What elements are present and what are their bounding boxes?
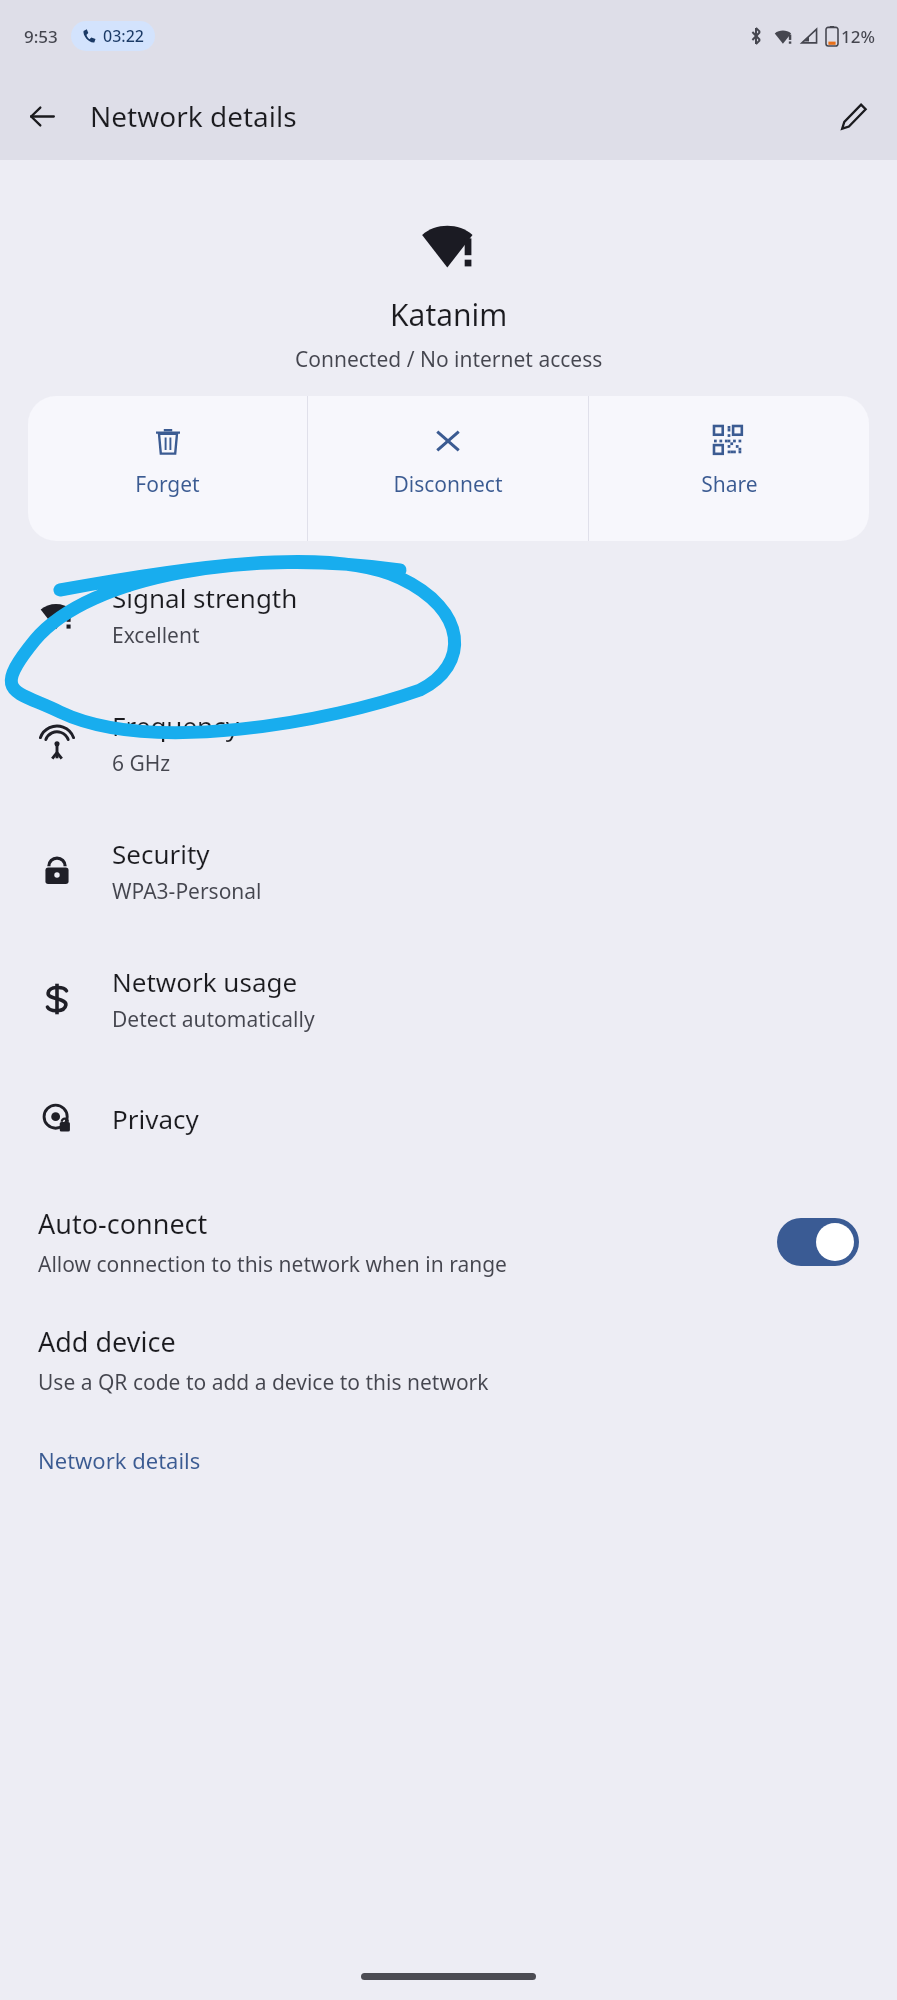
staticText: Share [701,470,758,499]
staticText: Privacy [112,1101,199,1136]
staticText: 6 GHz [112,749,171,778]
staticText: Auto-connect [38,1205,208,1242]
staticText: Add device [38,1323,176,1360]
button[interactable]: Add device [0,1309,897,1411]
staticText: Security [112,836,210,871]
staticText: Use a QR code to add a device to this ne… [38,1368,489,1397]
staticText: Network details [90,97,297,135]
button[interactable]: Share [589,396,869,541]
staticText: Signal strength [112,580,298,615]
button[interactable]: Signal strength [0,551,897,679]
staticText: 12% [841,25,875,48]
staticText: Allow connection to this network when in… [38,1250,507,1279]
staticText: Excellent [112,621,200,650]
staticText: Detect automatically [112,1005,315,1034]
staticText: Connected / No internet access [295,345,603,374]
button[interactable]: Disconnect [308,396,588,541]
staticText: Katanim [390,294,508,335]
staticText: 03:22 [103,25,144,47]
staticText: Network details [38,1445,201,1475]
staticText: WPA3-Personal [112,877,262,906]
staticText: Forget [135,470,200,499]
staticText: 9:53 [24,25,58,48]
button[interactable]: Security [0,807,897,935]
button[interactable]: Back [12,86,72,146]
button[interactable]: Network details [0,1437,897,1483]
staticText: Network usage [112,964,298,999]
button[interactable]: Auto-connect [0,1191,897,1293]
staticText: Disconnect [393,470,503,499]
button[interactable]: Privacy [0,1063,897,1173]
button[interactable]: Network usage [0,935,897,1063]
button[interactable]: Frequency [0,679,897,807]
button[interactable]: Forget [28,396,307,541]
staticText: Frequency [112,708,239,743]
button[interactable]: Edit [823,86,883,146]
